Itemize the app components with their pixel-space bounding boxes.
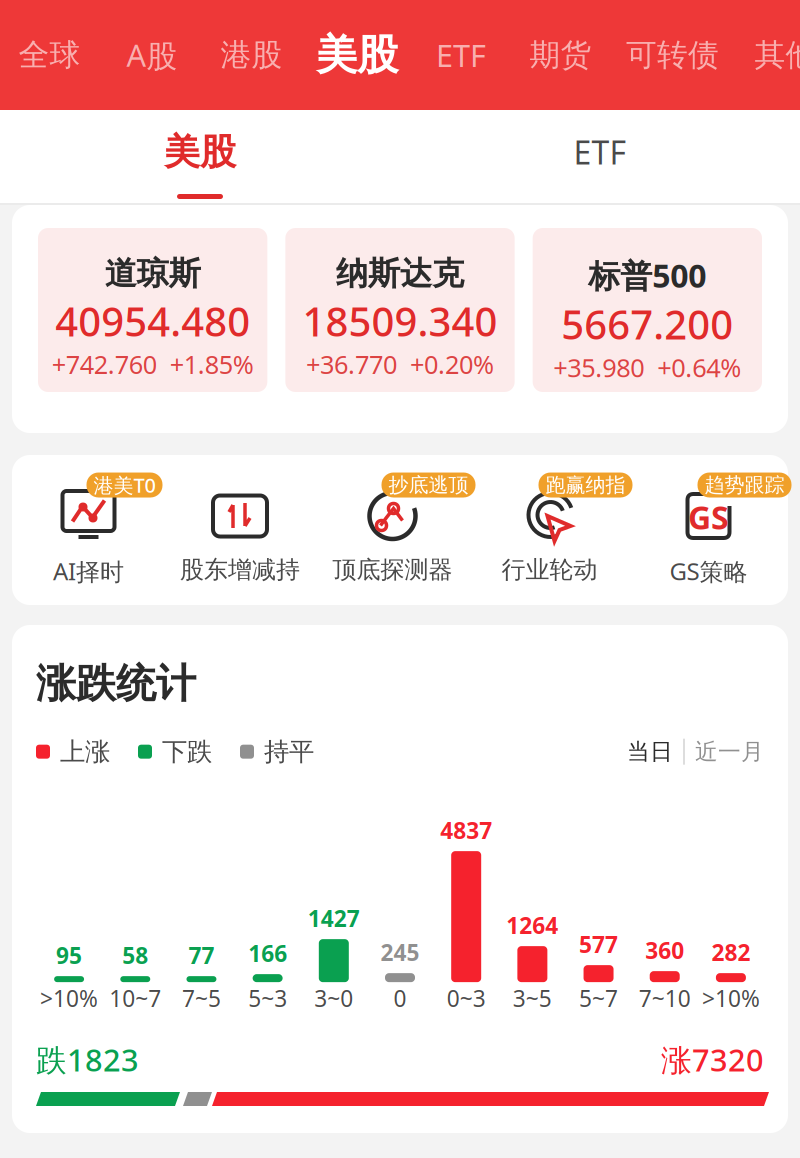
staticText: 美股 (316, 30, 398, 80)
staticText: +742.760 (52, 347, 157, 381)
staticText: 3~5 (513, 983, 552, 1013)
staticText: 58 (122, 940, 148, 970)
button[interactable]: 纳斯达克 (285, 228, 515, 392)
button[interactable]: ETF (410, 0, 511, 110)
staticText: 涨7320 (661, 1039, 764, 1080)
staticText: +36.770 (306, 347, 397, 381)
staticText: 0~3 (447, 983, 486, 1013)
staticText: 3~0 (314, 983, 353, 1013)
staticText: 7~5 (182, 983, 221, 1013)
staticText: A股 (126, 35, 177, 75)
staticText: 跑赢纳指 (545, 473, 625, 497)
button[interactable]: 美股 (0, 110, 400, 205)
staticText: 5~7 (579, 983, 618, 1013)
staticText: 当日 (627, 738, 673, 766)
staticText: 道琼斯 (105, 254, 201, 293)
button[interactable]: 当日 (627, 738, 673, 766)
button[interactable]: 道琼斯 (38, 228, 267, 392)
staticText: 7~10 (639, 983, 691, 1013)
button[interactable]: 标普500 (533, 228, 762, 392)
staticText: 可转债 (626, 36, 719, 74)
button[interactable]: 可转债 (609, 0, 735, 110)
button[interactable]: GS (629, 455, 788, 605)
staticText: 港美T0 (93, 472, 155, 498)
staticText: 纳斯达克 (336, 254, 464, 293)
staticText: 股东增减持 (180, 555, 300, 584)
button[interactable]: 美股 (303, 0, 410, 110)
staticText: 全球 (18, 36, 80, 74)
button[interactable]: 股东增减持 (165, 455, 315, 605)
button[interactable]: 港股 (199, 0, 303, 110)
staticText: 4837 (440, 815, 492, 845)
staticText: GS策略 (669, 555, 747, 587)
staticText: 18509.340 (302, 294, 497, 347)
staticText: +0.64% (657, 351, 741, 384)
staticText: 抄底逃顶 (388, 473, 468, 497)
staticText: +35.980 (553, 351, 644, 384)
staticText: 77 (188, 940, 214, 970)
staticText: 5~3 (248, 983, 287, 1013)
button[interactable]: 抄底逃顶 (315, 455, 470, 605)
staticText: GS (688, 496, 729, 538)
staticText: 1264 (506, 910, 558, 940)
button[interactable]: 其他 (735, 0, 800, 110)
staticText: 趋势跟踪 (704, 473, 784, 497)
staticText: 0 (393, 983, 406, 1013)
staticText: >10% (702, 983, 760, 1013)
staticText: 5667.200 (561, 297, 733, 351)
staticText: ETF (573, 131, 626, 173)
staticText: 40954.480 (55, 294, 250, 347)
button[interactable]: ETF (400, 110, 800, 205)
staticText: 上涨 (60, 736, 110, 767)
staticText: 其他 (754, 36, 800, 74)
staticText: 近一月 (695, 738, 764, 766)
staticText: AI择时 (53, 555, 124, 587)
staticText: 10~7 (109, 983, 161, 1013)
button[interactable]: 跑赢纳指 (470, 455, 629, 605)
staticText: 持平 (264, 736, 314, 767)
staticText: 顶底探测器 (332, 555, 452, 584)
staticText: +0.20% (410, 347, 494, 381)
button[interactable]: 全球 (0, 0, 104, 110)
staticText: 标普500 (588, 254, 706, 296)
staticText: 282 (711, 937, 750, 967)
staticText: 1427 (308, 903, 360, 933)
staticText: 行业轮动 (501, 555, 597, 584)
staticText: 577 (579, 929, 618, 959)
staticText: 港股 (220, 36, 282, 74)
staticText: 166 (248, 938, 287, 968)
button[interactable]: 近一月 (695, 738, 764, 766)
staticText: 期货 (529, 36, 591, 74)
staticText: 360 (645, 935, 684, 965)
button[interactable]: 港美T0 (12, 455, 165, 605)
staticText: +1.85% (170, 347, 254, 381)
staticText: 涨跌统计 (36, 659, 196, 708)
staticText: 美股 (164, 130, 236, 174)
staticText: ETF (436, 35, 486, 75)
staticText: 245 (380, 937, 419, 967)
staticText: 跌1823 (36, 1039, 139, 1080)
button[interactable]: 期货 (511, 0, 609, 110)
staticText: 95 (56, 940, 82, 970)
button[interactable]: A股 (104, 0, 199, 110)
staticText: 下跌 (162, 736, 212, 767)
staticText: >10% (40, 983, 98, 1013)
